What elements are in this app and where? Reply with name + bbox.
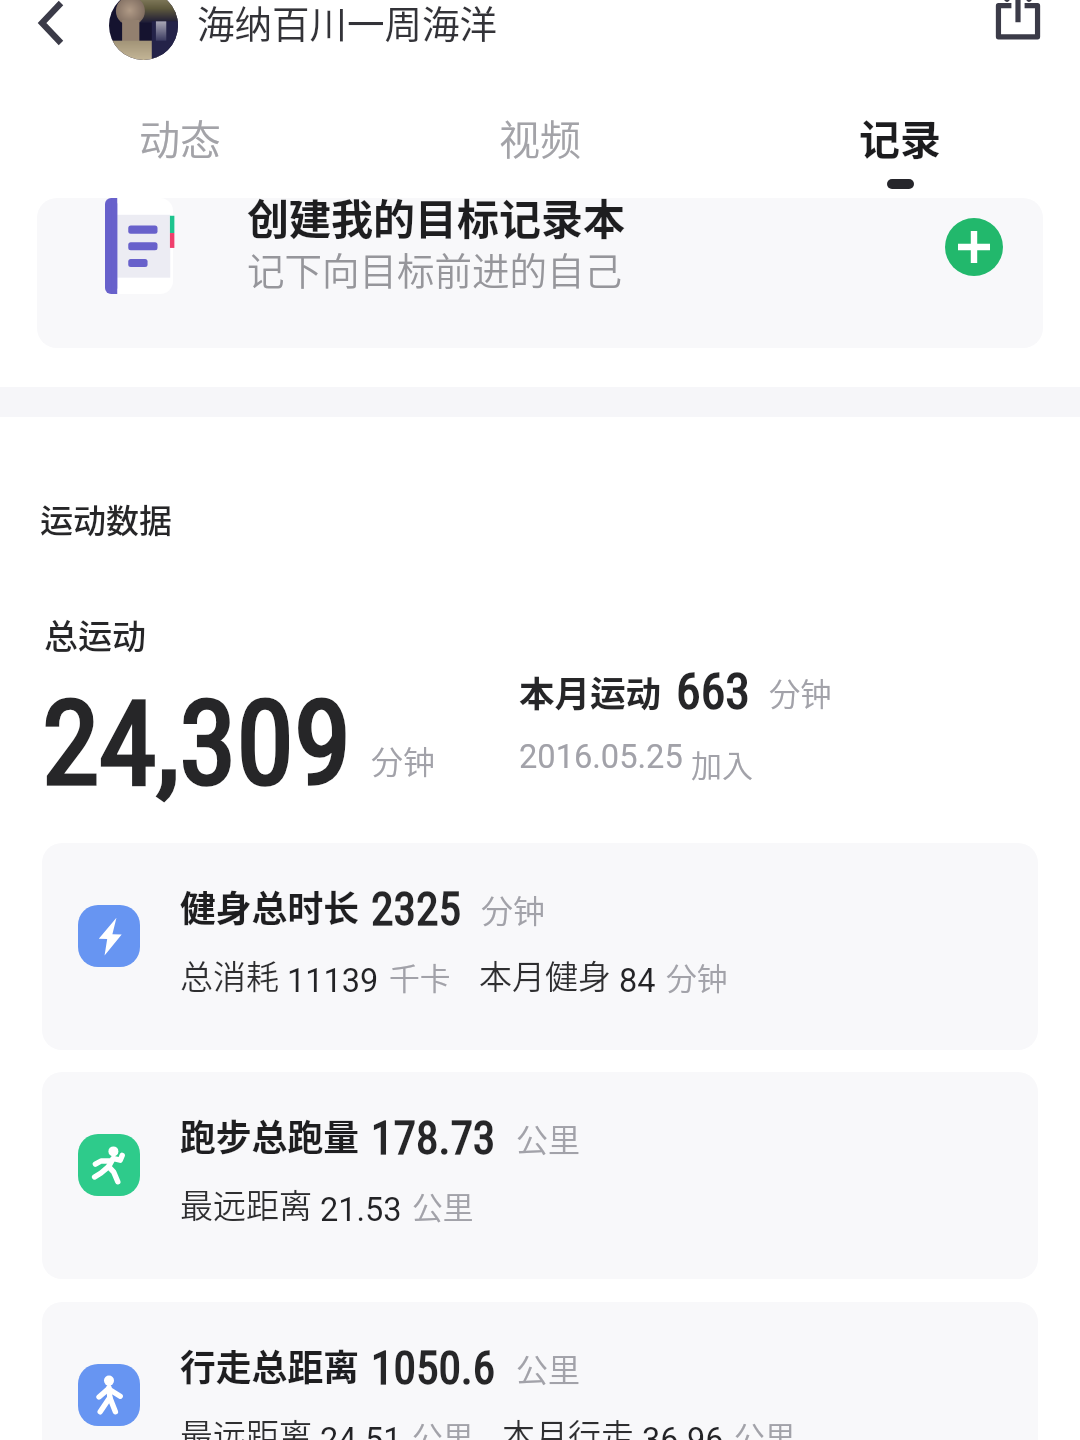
button[interactable]: Share [982, 0, 1054, 56]
staticText: 海纳百川一周海洋 [197, 0, 497, 48]
staticText: 24,309 [42, 676, 352, 812]
button[interactable]: 记录 [820, 107, 980, 199]
button[interactable]: 动态 [100, 107, 260, 199]
staticText: 分钟 [481, 886, 546, 932]
staticText: 最远距离 [180, 1410, 312, 1440]
staticText: 2325 [371, 883, 461, 936]
staticText: 1050.6 [371, 1342, 496, 1395]
staticText: 公里 [516, 1115, 581, 1161]
staticText: 记录 [859, 107, 941, 166]
staticText: 178.73 [371, 1112, 496, 1165]
button[interactable]: 视频 [460, 107, 620, 199]
staticText: 视频 [499, 107, 581, 166]
staticText: 运动数据 [40, 495, 172, 543]
staticText: 663 [676, 663, 751, 722]
staticText: 记下向目标前进的自己 [247, 241, 622, 295]
staticText: 84 [619, 962, 656, 1000]
staticText: 公里 [412, 1413, 474, 1440]
staticText: 本月健身 [479, 951, 611, 999]
staticText: 最远距离 [180, 1180, 312, 1228]
staticText: 36.96 [642, 1421, 724, 1440]
staticText: 行走总距离 [180, 1339, 359, 1391]
staticText: 健身总时长 [180, 880, 359, 932]
staticText: 公里 [734, 1413, 796, 1440]
staticText: 11139 [287, 962, 379, 1000]
staticText: 本月行走 [502, 1410, 634, 1440]
staticText: 公里 [516, 1345, 581, 1391]
button[interactable]: 创建我的目标记录本 [37, 198, 1043, 348]
button[interactable]: 行走总距离 [42, 1302, 1038, 1440]
staticText: 分钟 [666, 954, 728, 999]
staticText: 本月运动 [519, 666, 662, 717]
staticText: 创建我的目标记录本 [247, 198, 626, 247]
staticText: 分钟 [371, 737, 436, 783]
staticText: 跑步总跑量 [180, 1109, 359, 1161]
staticText: 动态 [139, 107, 221, 166]
staticText: 24.51 [320, 1421, 402, 1440]
staticText: 公里 [412, 1183, 474, 1228]
button[interactable]: 健身总时长 [42, 843, 1038, 1050]
staticText: 21.53 [320, 1191, 402, 1229]
staticText: 分钟 [769, 670, 832, 715]
staticText: 2016.05.25 [519, 738, 683, 776]
staticText: 总消耗 [180, 951, 279, 999]
button[interactable]: Create goal notebook [945, 218, 1003, 276]
button[interactable]: 跑步总跑量 [42, 1072, 1038, 1279]
button[interactable]: Profile photo [109, 0, 178, 60]
staticText: 千卡 [389, 954, 451, 999]
staticText: 加入 [691, 741, 753, 786]
button[interactable]: Back [20, 0, 84, 55]
staticText: 总运动 [44, 610, 146, 659]
